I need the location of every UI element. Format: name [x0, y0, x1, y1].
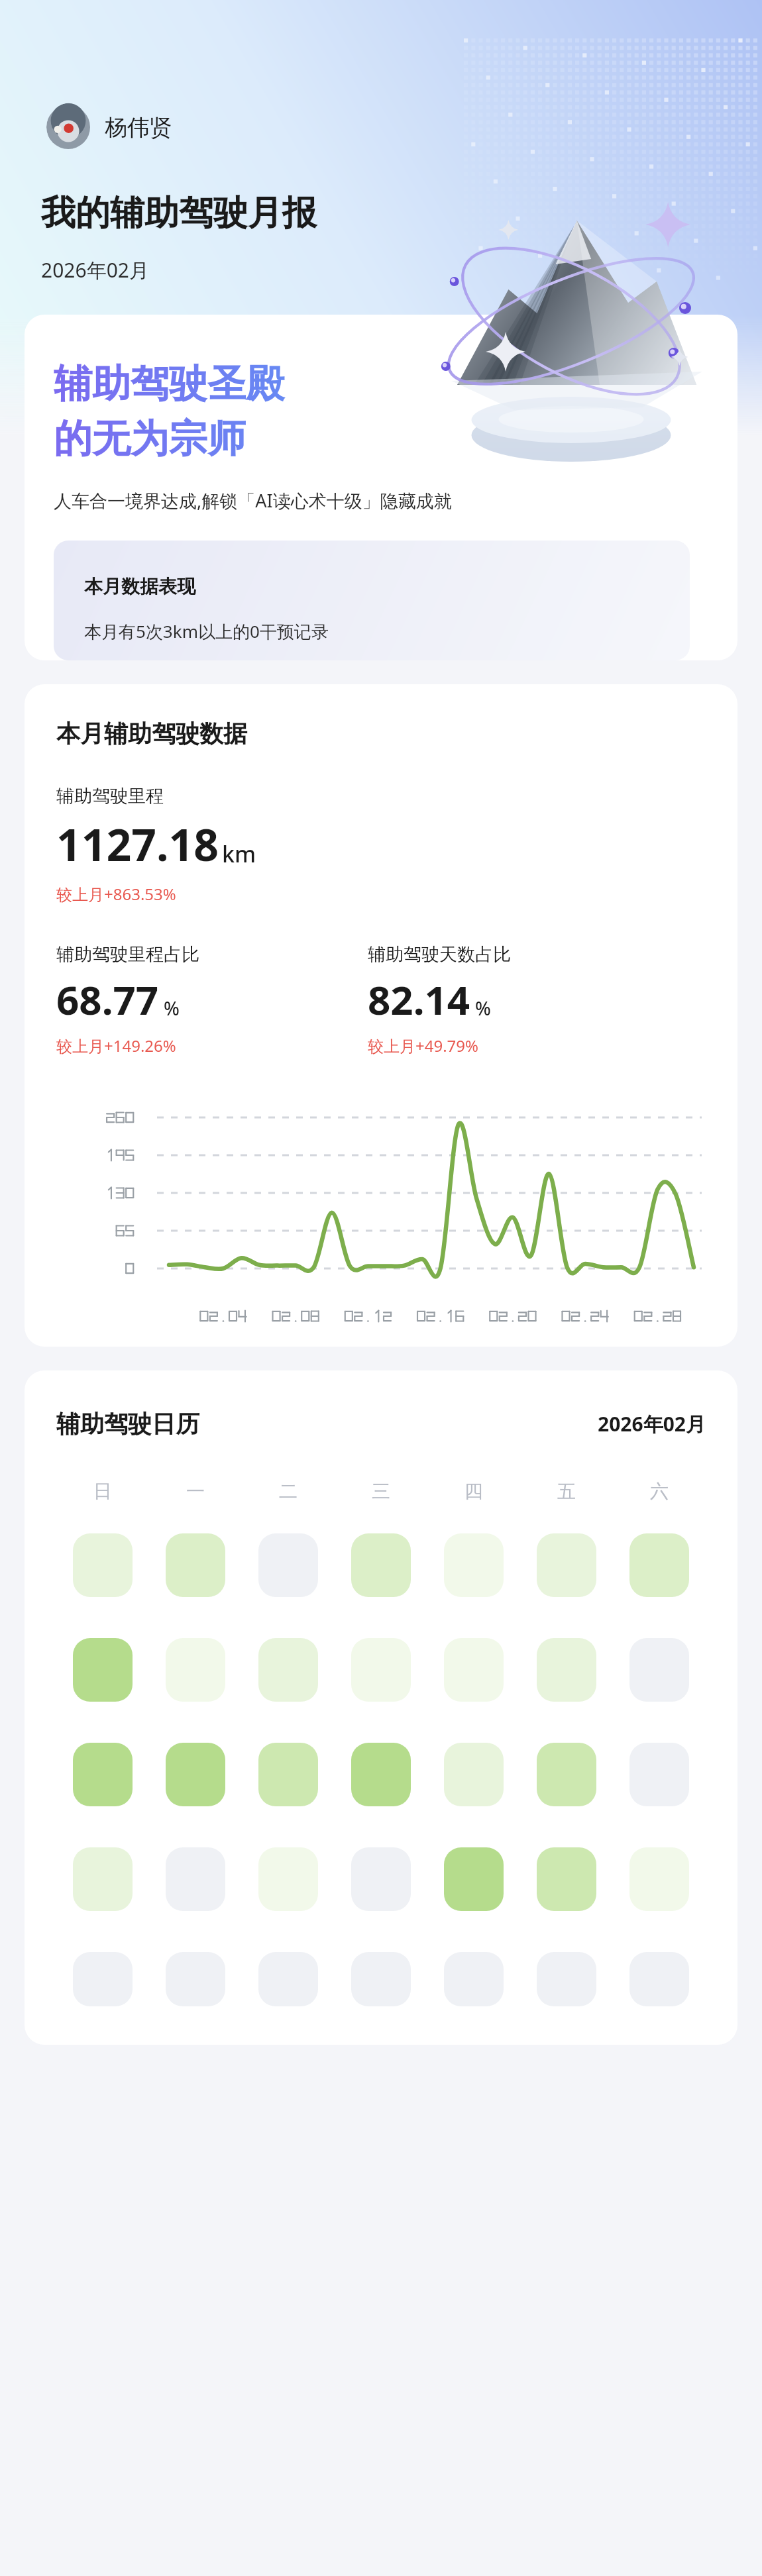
button[interactable]: 日期	[444, 1743, 504, 1806]
button[interactable]: 日期	[73, 1743, 133, 1806]
button[interactable]: 本月数据表现	[54, 541, 690, 660]
staticText: 82.14	[368, 972, 470, 1027]
button[interactable]: 日期	[166, 1952, 225, 2006]
button[interactable]: 日期	[258, 1847, 318, 1911]
staticText: 辅助驾驶里程占比	[56, 943, 199, 966]
button[interactable]: 日期	[351, 1952, 411, 2006]
button[interactable]: 日期	[73, 1952, 133, 2006]
staticText: 人车合一境界达成,解锁「AI读心术十级」隐藏成就	[54, 488, 452, 513]
staticText: 一	[186, 1480, 205, 1503]
staticText: 辅助驾驶里程	[56, 785, 164, 807]
staticText: 我的辅助驾驶月报	[41, 191, 317, 235]
button[interactable]: 日期	[629, 1638, 689, 1702]
button[interactable]: 日期	[258, 1743, 318, 1806]
button[interactable]: 日期	[73, 1847, 133, 1911]
staticText: 三	[372, 1480, 390, 1503]
button[interactable]	[25, 315, 737, 660]
button[interactable]: 本月辅助驾驶数据	[25, 684, 737, 1347]
staticText: 68.77	[56, 972, 159, 1027]
button[interactable]: 日期	[444, 1952, 504, 2006]
button[interactable]: 日期	[537, 1533, 596, 1597]
button[interactable]: 日期	[537, 1638, 596, 1702]
staticText: 的无为宗师	[54, 415, 246, 463]
button[interactable]: 日期	[73, 1533, 133, 1597]
staticText: 辅助驾驶日历	[56, 1409, 199, 1439]
staticText: 1127.18	[56, 814, 219, 874]
button[interactable]: 日期	[629, 1847, 689, 1911]
button[interactable]: 日期	[537, 1847, 596, 1911]
button[interactable]: 日期	[629, 1533, 689, 1597]
staticText: 二	[279, 1480, 298, 1503]
staticText: 杨伟贤	[105, 113, 172, 142]
button[interactable]: 日期	[166, 1638, 225, 1702]
staticText: 2026年02月	[41, 256, 149, 283]
staticText: 辅助驾驶天数占比	[368, 943, 511, 966]
staticText: 较上月+49.79%	[368, 1035, 479, 1056]
button[interactable]: 日期	[444, 1847, 504, 1911]
staticText: km	[222, 839, 256, 869]
button[interactable]: 日期	[258, 1533, 318, 1597]
button[interactable]: 日期	[351, 1847, 411, 1911]
staticText: 辅助驾驶圣殿	[54, 360, 284, 408]
staticText: %	[475, 996, 491, 1021]
button[interactable]: 日期	[73, 1638, 133, 1702]
button[interactable]: 日期	[351, 1743, 411, 1806]
button[interactable]: 日期	[537, 1952, 596, 2006]
button[interactable]: 日期	[351, 1638, 411, 1702]
staticText: 2026年02月	[598, 1410, 706, 1437]
button[interactable]: 日期	[166, 1847, 225, 1911]
staticText: 本月数据表现	[84, 575, 195, 598]
staticText: 较上月+863.53%	[56, 883, 176, 905]
staticText: 较上月+149.26%	[56, 1035, 176, 1056]
staticText: 四	[464, 1480, 483, 1503]
staticText: 六	[650, 1480, 669, 1503]
staticText: 五	[557, 1480, 576, 1503]
button[interactable]: 日期	[166, 1533, 225, 1597]
staticText: %	[164, 996, 180, 1021]
button[interactable]: 辅助驾驶日历	[25, 1370, 737, 2045]
button[interactable]: 日期	[537, 1743, 596, 1806]
button[interactable]: 杨伟贤	[46, 103, 186, 152]
staticText: 日	[93, 1480, 112, 1503]
button[interactable]: 日期	[444, 1638, 504, 1702]
button[interactable]: 日期	[258, 1952, 318, 2006]
button[interactable]: 日期	[166, 1743, 225, 1806]
button[interactable]: 日期	[629, 1952, 689, 2006]
button[interactable]: 日期	[629, 1743, 689, 1806]
button[interactable]: 日期	[351, 1533, 411, 1597]
staticText: 本月有5次3km以上的0干预记录	[84, 619, 329, 643]
staticText: 本月辅助驾驶数据	[56, 719, 247, 748]
button[interactable]: 日期	[258, 1638, 318, 1702]
button[interactable]: 日期	[444, 1533, 504, 1597]
